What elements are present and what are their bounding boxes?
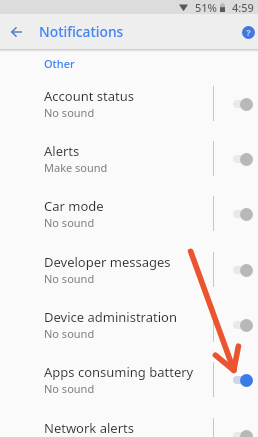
button[interactable]: Toggle Network alerts — [214, 408, 258, 437]
button[interactable]: Toggle Apps consuming battery — [214, 352, 258, 407]
staticText: Network alerts — [44, 419, 134, 437]
staticText: Other — [44, 56, 75, 71]
button[interactable]: Device administration — [0, 297, 258, 352]
staticText: No sound — [44, 271, 95, 286]
staticText: Notifications — [39, 22, 124, 41]
button[interactable]: Toggle Developer messages — [214, 242, 258, 297]
button[interactable]: Developer messages — [0, 242, 258, 297]
staticText: 51% — [195, 0, 217, 14]
staticText: No sound — [44, 381, 95, 396]
button[interactable]: Toggle Alerts — [214, 131, 258, 186]
button[interactable]: Account status — [0, 76, 258, 131]
staticText: Apps consuming battery — [44, 363, 194, 381]
button[interactable]: Toggle Account status — [214, 76, 258, 131]
button[interactable]: Alerts — [0, 131, 258, 186]
staticText: Make sound — [44, 160, 108, 175]
staticText: No sound — [44, 105, 95, 120]
staticText: ? — [246, 26, 251, 39]
staticText: No sound — [44, 215, 95, 230]
button[interactable]: Toggle Device administration — [214, 297, 258, 352]
button[interactable]: Toggle Car mode — [214, 186, 258, 241]
button[interactable]: Apps consuming battery — [0, 352, 258, 407]
staticText: Alerts — [44, 142, 80, 160]
button[interactable]: Network alerts — [0, 408, 258, 437]
staticText: 4:59 — [232, 0, 254, 14]
button[interactable]: Navigate up — [0, 14, 32, 49]
staticText: Developer messages — [44, 253, 171, 271]
staticText: Account status — [44, 87, 134, 105]
staticText: Device administration — [44, 308, 177, 326]
button[interactable]: Car mode — [0, 186, 258, 241]
staticText: No sound — [44, 326, 95, 341]
staticText: Car mode — [44, 197, 104, 215]
button[interactable]: Help — [235, 19, 258, 45]
